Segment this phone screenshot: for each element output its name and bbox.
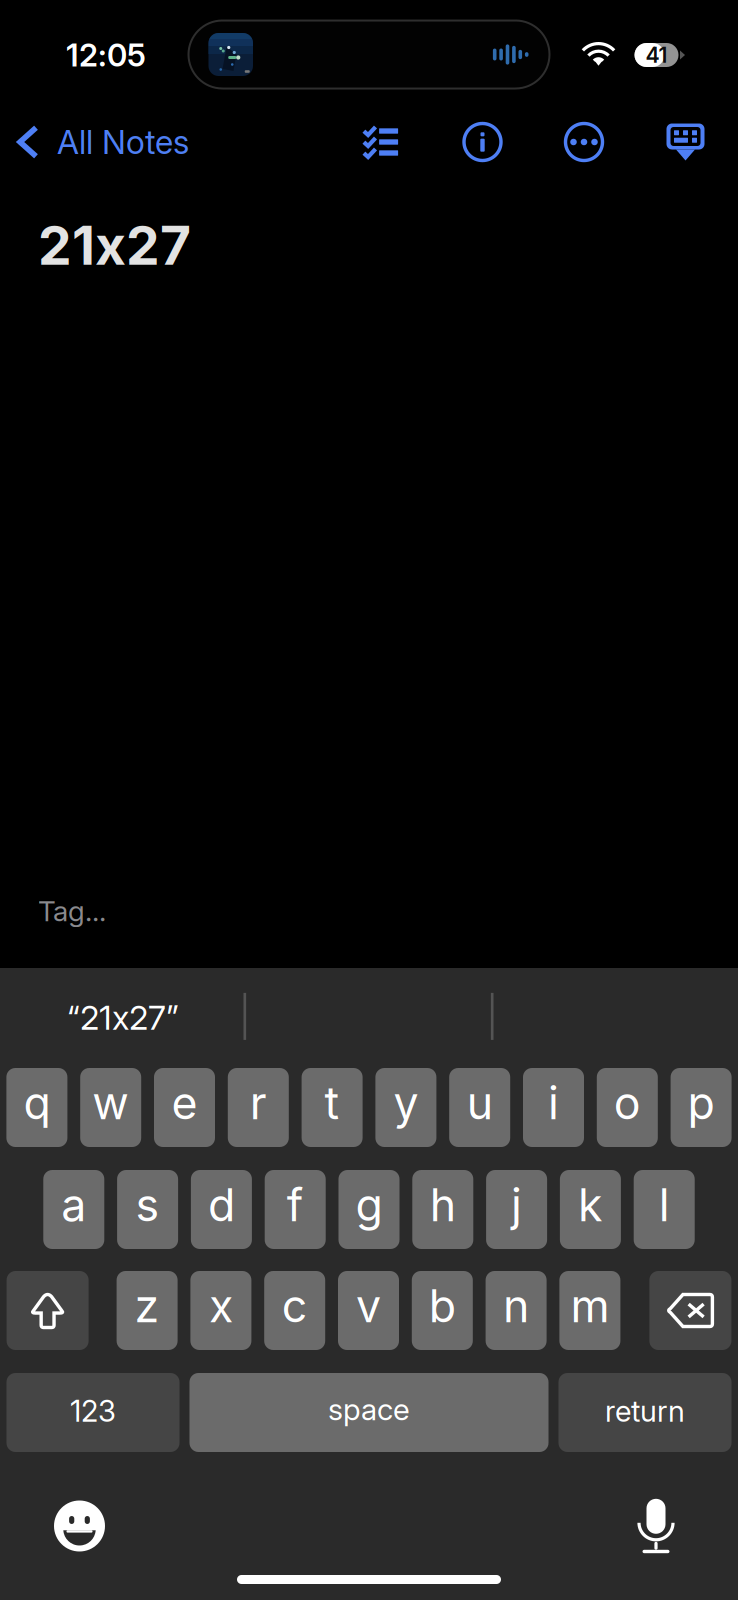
staticText: p [688, 1076, 715, 1130]
staticText: w [92, 1076, 129, 1130]
staticText: d [208, 1178, 235, 1232]
button[interactable]: i [523, 1068, 584, 1147]
button[interactable]: z [117, 1271, 178, 1350]
staticText: b [429, 1279, 456, 1333]
button[interactable]: f [265, 1170, 326, 1249]
button[interactable]: o [597, 1068, 658, 1147]
button[interactable]: Emoji [54, 1500, 105, 1551]
button[interactable]: e [154, 1068, 215, 1147]
staticText: j [511, 1178, 522, 1232]
staticText: m [570, 1279, 609, 1333]
staticText: Tag... [38, 894, 106, 928]
button[interactable]: Hide Keyboard [653, 114, 717, 170]
staticText: 12:05 [66, 36, 146, 74]
button[interactable]: a [43, 1170, 104, 1249]
staticText: s [136, 1178, 160, 1232]
staticText: i [548, 1076, 559, 1130]
button[interactable]: d [191, 1170, 252, 1249]
staticText: o [614, 1076, 641, 1130]
button[interactable]: g [338, 1170, 399, 1249]
button[interactable]: j [486, 1170, 547, 1249]
button[interactable]: r [228, 1068, 289, 1147]
button[interactable]: h [412, 1170, 473, 1249]
button[interactable]: p [671, 1068, 732, 1147]
staticText: e [171, 1076, 197, 1130]
button[interactable]: u [449, 1068, 510, 1147]
staticText: u [467, 1076, 493, 1130]
button[interactable]: s [117, 1170, 178, 1249]
button[interactable]: Dictate [637, 1499, 675, 1553]
staticText: n [503, 1279, 529, 1333]
button[interactable]: Info [450, 114, 514, 170]
staticText: space [328, 1391, 410, 1427]
staticText: v [356, 1279, 381, 1333]
button[interactable]: return [558, 1373, 731, 1452]
staticText: t [325, 1076, 340, 1130]
staticText: z [135, 1279, 160, 1333]
button[interactable]: v [338, 1271, 399, 1350]
staticText: g [355, 1178, 382, 1232]
staticText: 21x27 [38, 213, 191, 277]
staticText: x [209, 1279, 233, 1333]
button[interactable]: w [80, 1068, 141, 1147]
button[interactable]: Checklist [349, 114, 413, 170]
button[interactable]: space [189, 1373, 548, 1452]
staticText: h [430, 1178, 456, 1232]
button[interactable]: q [6, 1068, 67, 1147]
staticText: q [23, 1076, 50, 1130]
staticText: a [61, 1178, 86, 1232]
button[interactable]: b [412, 1271, 473, 1350]
staticText: f [287, 1178, 304, 1232]
button[interactable]: c [264, 1271, 325, 1350]
button[interactable]: Shift [7, 1271, 89, 1350]
button[interactable]: t [302, 1068, 363, 1147]
staticText: l [659, 1178, 670, 1232]
staticText: All Notes [57, 122, 189, 162]
staticText: c [282, 1279, 308, 1333]
staticText: k [578, 1178, 603, 1232]
staticText: 123 [70, 1393, 116, 1429]
button[interactable]: m [559, 1271, 620, 1350]
staticText: 41 [645, 42, 667, 68]
staticText: return [605, 1393, 685, 1429]
staticText: r [250, 1076, 267, 1130]
staticText: y [393, 1076, 418, 1130]
button[interactable]: 123 [6, 1373, 179, 1452]
button[interactable]: x [190, 1271, 251, 1350]
button[interactable]: n [486, 1271, 547, 1350]
button[interactable]: y [375, 1068, 436, 1147]
button[interactable]: l [634, 1170, 695, 1249]
button[interactable]: Delete [649, 1271, 731, 1350]
staticText: “21x27” [67, 997, 179, 1038]
button[interactable]: k [560, 1170, 621, 1249]
button[interactable]: All Notes [0, 112, 189, 172]
button[interactable]: More [552, 114, 616, 170]
